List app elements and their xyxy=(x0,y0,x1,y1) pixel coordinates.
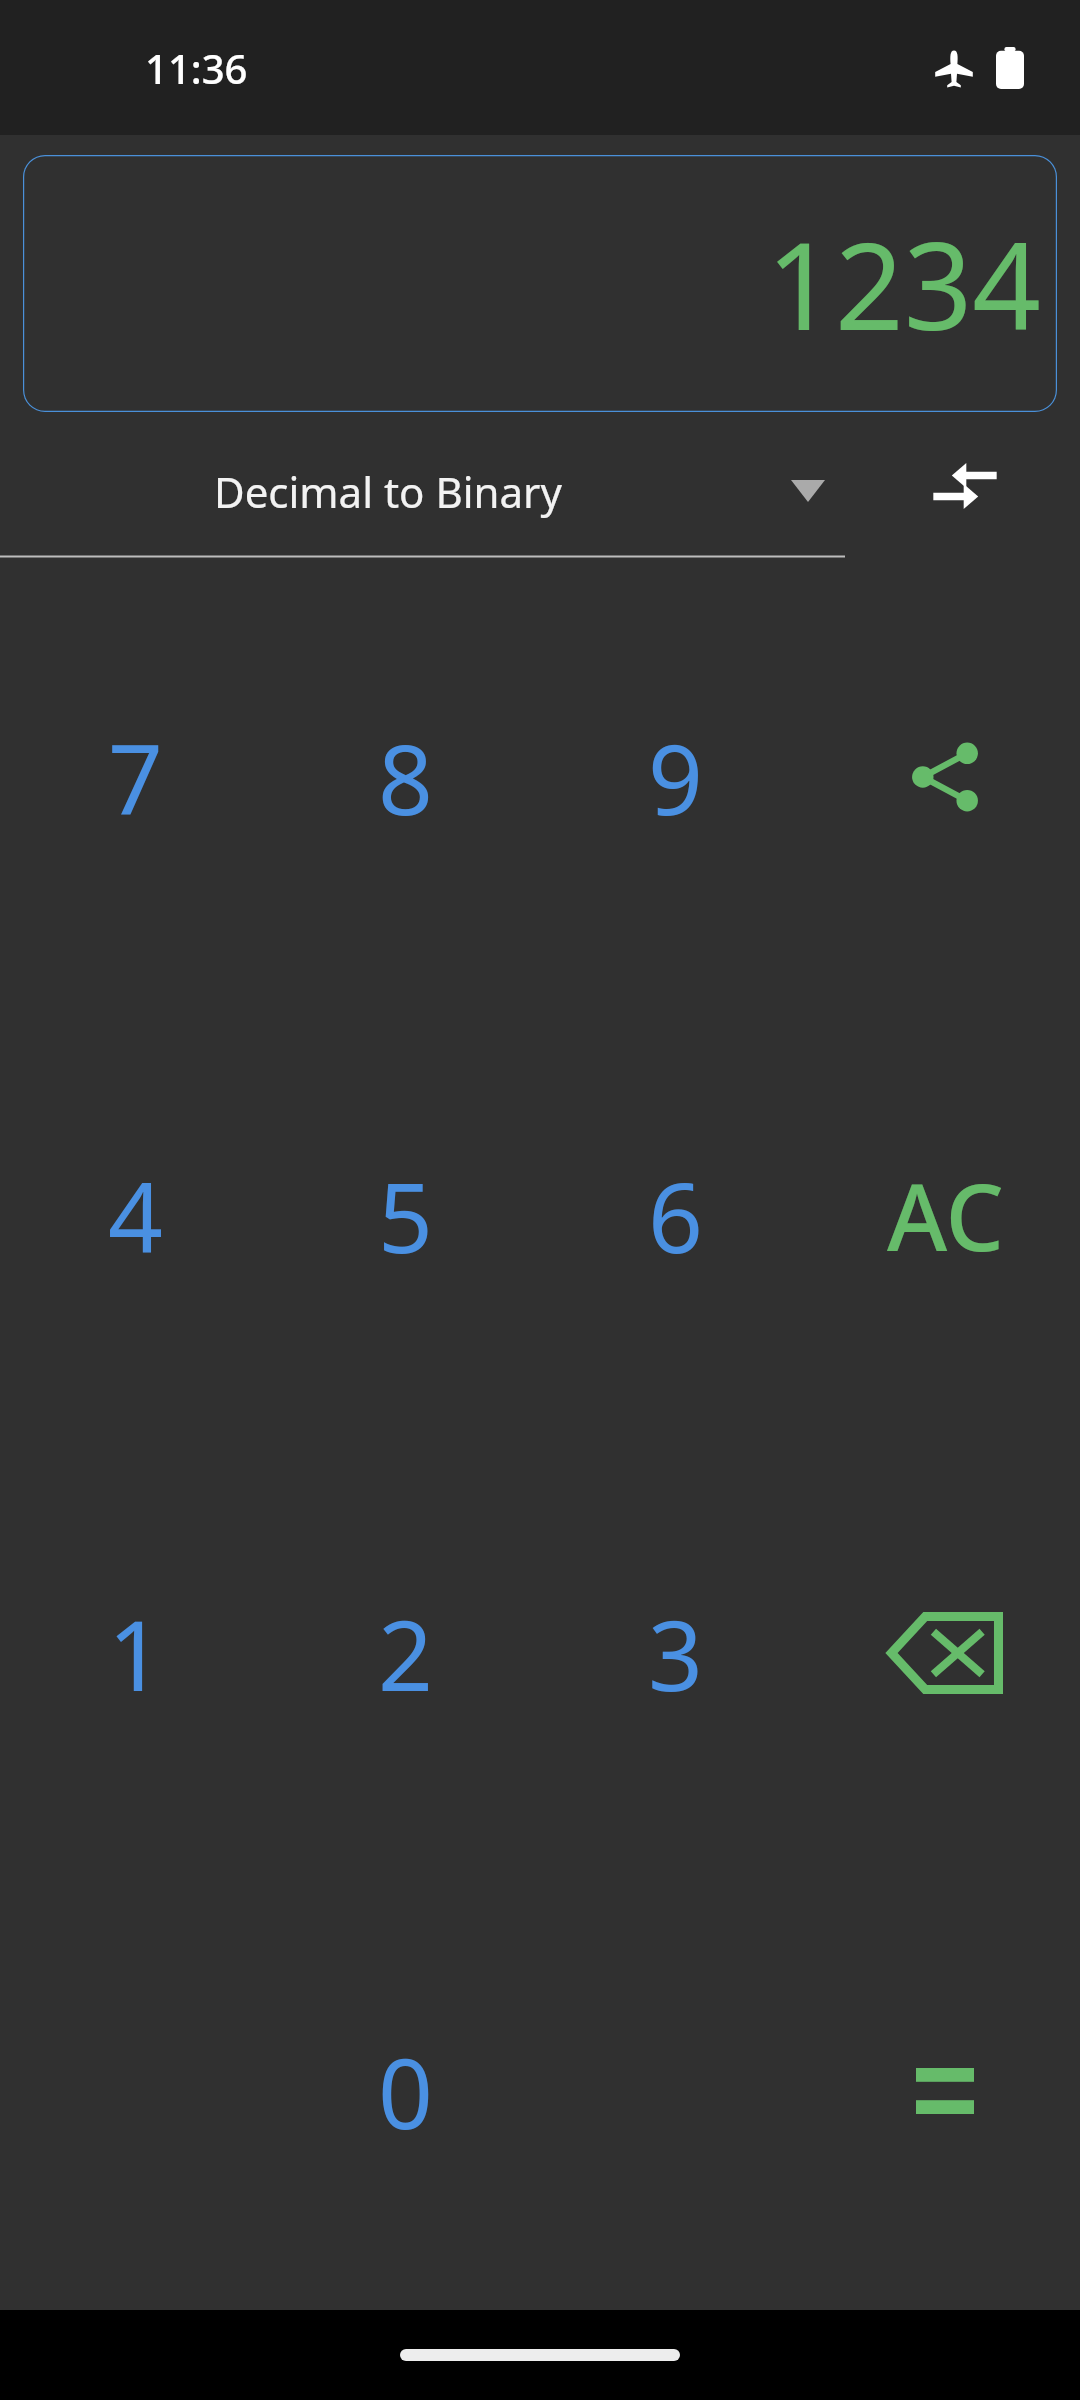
staticText: 6 xyxy=(648,1150,703,1281)
button[interactable]: 7 xyxy=(0,558,270,996)
staticText: Decimal to Binary xyxy=(214,463,562,520)
staticText: 1234 xyxy=(766,202,1041,365)
button[interactable]: Swap conversion direction xyxy=(900,448,1030,548)
button[interactable]: 1 xyxy=(0,1434,270,1872)
staticText: 11:36 xyxy=(145,41,248,95)
staticText: 3 xyxy=(648,1588,703,1719)
button[interactable]: Decimal to Binary xyxy=(0,448,845,558)
staticText: 4 xyxy=(108,1150,163,1281)
staticText: 7 xyxy=(108,712,163,843)
staticText: 5 xyxy=(378,1150,433,1281)
button[interactable]: 8 xyxy=(270,558,540,996)
button[interactable]: 4 xyxy=(0,996,270,1434)
button[interactable]: Equals xyxy=(855,2016,1035,2166)
button[interactable]: 1234 xyxy=(23,155,1057,412)
button[interactable]: 9 xyxy=(540,558,810,996)
staticText: AC xyxy=(887,1153,1004,1278)
button[interactable]: 5 xyxy=(270,996,540,1434)
staticText: 1 xyxy=(108,1588,163,1719)
button[interactable]: 6 xyxy=(540,996,810,1434)
button[interactable]: Backspace xyxy=(845,1573,1045,1733)
staticText: 9 xyxy=(648,712,703,843)
staticText: 2 xyxy=(378,1588,433,1719)
button[interactable]: Share xyxy=(855,687,1035,867)
staticText: 0 xyxy=(378,2026,433,2157)
button[interactable]: 0 xyxy=(270,1872,540,2310)
button[interactable]: 2 xyxy=(270,1434,540,1872)
staticText: 8 xyxy=(378,712,433,843)
button[interactable]: AC xyxy=(845,1135,1045,1295)
button[interactable]: 3 xyxy=(540,1434,810,1872)
